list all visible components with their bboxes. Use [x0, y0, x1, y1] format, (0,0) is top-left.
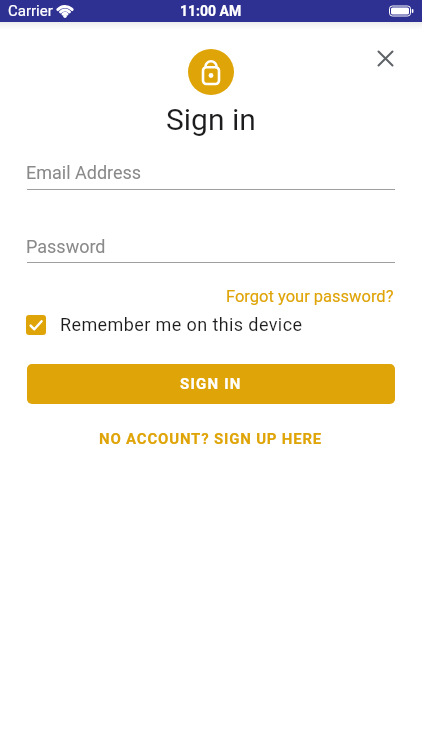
staticText: Sign in	[166, 102, 256, 137]
staticText: 11:00 AM	[180, 3, 242, 19]
staticText: Remember me on this device	[60, 314, 303, 335]
staticText: Carrier	[8, 2, 53, 20]
button[interactable]: Forgot your password?	[226, 287, 394, 306]
button[interactable]	[26, 315, 46, 335]
button[interactable]: SIGN IN	[27, 364, 395, 404]
staticText: Password	[26, 236, 106, 257]
staticText: Forgot your password?	[226, 287, 394, 306]
staticText: Email Address	[26, 162, 142, 183]
button[interactable]	[373, 46, 397, 70]
staticText: NO ACCOUNT? SIGN UP HERE	[99, 430, 323, 448]
staticText: SIGN IN	[180, 375, 242, 393]
button[interactable]: NO ACCOUNT? SIGN UP HERE	[99, 430, 323, 448]
